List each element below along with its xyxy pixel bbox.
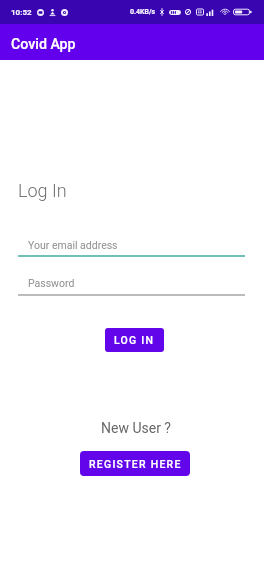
staticText: Log In (18, 180, 67, 201)
button[interactable]: Email address field (18, 234, 245, 256)
staticText: Password (28, 277, 75, 289)
staticText: LOG IN (114, 334, 155, 346)
button[interactable]: Password field (18, 272, 245, 294)
staticText: REGISTER HERE (89, 458, 182, 470)
staticText: 0.4KB/s (130, 8, 156, 16)
button[interactable]: REGISTER HERE (80, 451, 190, 476)
staticText: Your email address (28, 239, 118, 251)
button[interactable]: LOG IN (105, 328, 164, 352)
staticText: Covid App (11, 36, 76, 53)
staticText: New User ? (101, 420, 171, 436)
staticText: 10:52 (11, 8, 32, 17)
